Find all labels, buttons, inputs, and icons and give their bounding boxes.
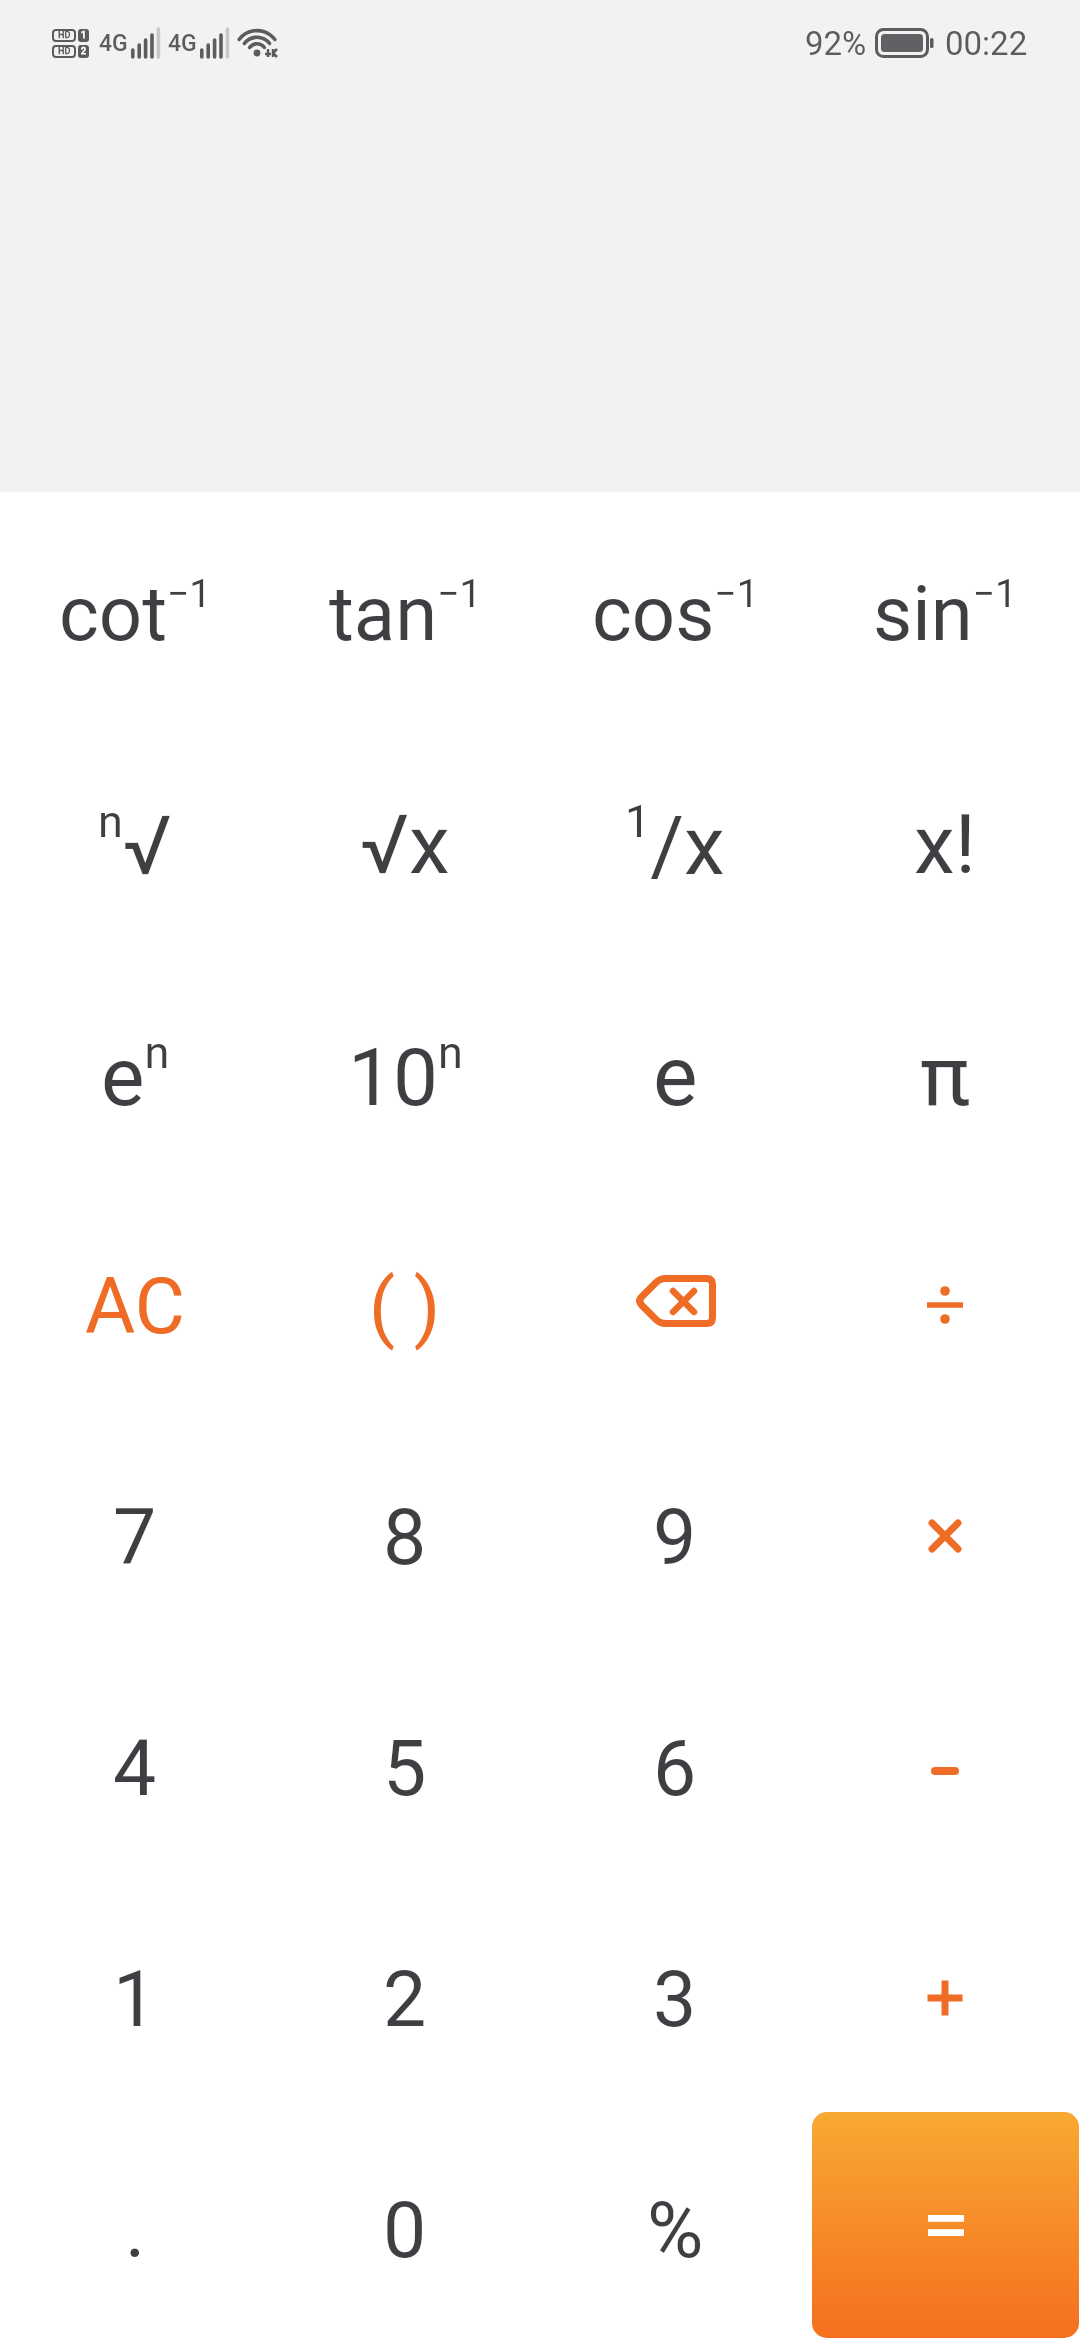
staticText: tan−1 xyxy=(329,569,482,658)
staticText: 5 xyxy=(383,1724,427,1814)
button[interactable]: % xyxy=(540,2109,810,2340)
staticText: ( ) xyxy=(369,1262,441,1351)
button[interactable]: n√ xyxy=(0,723,270,954)
staticText: 10n xyxy=(348,1026,463,1125)
button[interactable]: 0 xyxy=(270,2109,540,2340)
staticText: en xyxy=(101,1026,170,1125)
button[interactable]: 3 xyxy=(540,1878,810,2109)
button[interactable]: 5 xyxy=(270,1647,540,1878)
staticText: . xyxy=(125,2186,146,2276)
button[interactable]: 10n xyxy=(270,954,540,1185)
button[interactable]: tan−1 xyxy=(270,492,540,723)
button[interactable] xyxy=(810,1185,1080,1416)
button[interactable]: cos−1 xyxy=(540,492,810,723)
button[interactable] xyxy=(810,2109,1080,2340)
button[interactable]: ( ) xyxy=(270,1185,540,1416)
staticText: n√ xyxy=(98,795,172,894)
button[interactable]: 1 xyxy=(0,1878,270,2109)
button[interactable]: √x xyxy=(270,723,540,954)
staticText: 3 xyxy=(653,1955,697,2045)
button[interactable]: 1/x xyxy=(540,723,810,954)
button[interactable] xyxy=(540,1185,810,1416)
staticText: AC xyxy=(85,1262,185,1352)
staticText: x! xyxy=(914,797,976,893)
staticText: sin−1 xyxy=(873,569,1017,658)
staticText: 7 xyxy=(113,1493,157,1583)
button[interactable]: 6 xyxy=(540,1647,810,1878)
button[interactable]: e xyxy=(540,954,810,1185)
button[interactable]: cot−1 xyxy=(0,492,270,723)
staticText: cot−1 xyxy=(59,569,212,658)
staticText: % xyxy=(647,2186,704,2276)
staticText: 1 xyxy=(113,1955,157,2045)
button[interactable]: x! xyxy=(810,723,1080,954)
staticText: 8 xyxy=(383,1493,427,1583)
staticText: cos−1 xyxy=(592,569,759,658)
staticText: 9 xyxy=(653,1493,697,1583)
button[interactable] xyxy=(810,1416,1080,1647)
button[interactable] xyxy=(810,1647,1080,1878)
button[interactable]: 7 xyxy=(0,1416,270,1647)
button[interactable]: π xyxy=(810,954,1080,1185)
button[interactable]: AC xyxy=(0,1185,270,1416)
button[interactable]: 8 xyxy=(270,1416,540,1647)
staticText: √x xyxy=(360,797,450,893)
staticText: π xyxy=(920,1027,971,1125)
staticText: HD xyxy=(58,46,71,57)
staticText: 00:22 xyxy=(945,24,1028,63)
button[interactable]: en xyxy=(0,954,270,1185)
staticText: 2 xyxy=(81,46,87,57)
staticText: HD xyxy=(58,30,71,41)
button[interactable]: . xyxy=(0,2109,270,2340)
staticText: 6 xyxy=(653,1724,697,1814)
staticText: 4G xyxy=(99,30,128,57)
button[interactable] xyxy=(812,2112,1079,2338)
staticText: 0 xyxy=(383,2186,427,2276)
staticText: e xyxy=(653,1027,698,1125)
staticText: 1 xyxy=(81,30,87,41)
button[interactable] xyxy=(810,1878,1080,2109)
button[interactable]: sin−1 xyxy=(810,492,1080,723)
button[interactable]: 4 xyxy=(0,1647,270,1878)
button[interactable]: 2 xyxy=(270,1878,540,2109)
button[interactable]: 9 xyxy=(540,1416,810,1647)
staticText: 4 xyxy=(113,1724,157,1814)
staticText: 4G xyxy=(168,30,197,57)
staticText: 1/x xyxy=(625,795,725,894)
staticText: 2 xyxy=(383,1955,427,2045)
staticText: 92% xyxy=(805,24,867,63)
